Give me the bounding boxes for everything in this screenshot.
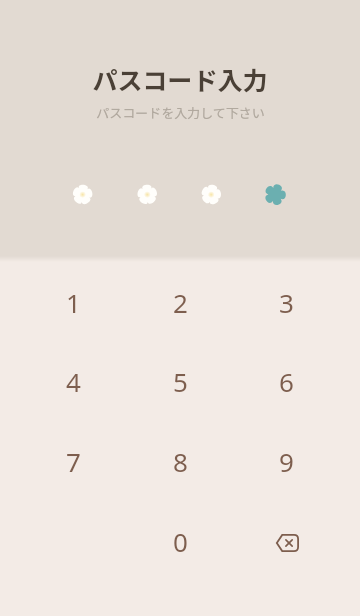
button[interactable]: Backspace [250,509,322,573]
staticText: 8 [173,444,188,479]
staticText: 5 [173,364,188,399]
staticText: パスコードを入力して下さい [96,103,265,122]
button[interactable]: 6 [250,349,322,413]
staticText: 1 [66,285,81,320]
button[interactable]: 1 [37,270,109,334]
staticText: 2 [173,285,188,320]
staticText: パスコード入力 [92,61,268,97]
button[interactable]: 3 [250,270,322,334]
staticText: 4 [66,364,81,399]
staticText: 6 [279,364,294,399]
staticText: 9 [279,444,294,479]
button[interactable]: 0 [144,509,216,573]
staticText: 3 [279,285,294,320]
staticText: 0 [173,524,188,559]
button[interactable]: 9 [250,429,322,493]
button[interactable]: 7 [37,429,109,493]
button[interactable]: 2 [144,270,216,334]
other: Backspace [264,519,308,563]
staticText: 7 [66,444,81,479]
button[interactable]: 4 [37,349,109,413]
button[interactable]: 8 [144,429,216,493]
button[interactable]: 5 [144,349,216,413]
